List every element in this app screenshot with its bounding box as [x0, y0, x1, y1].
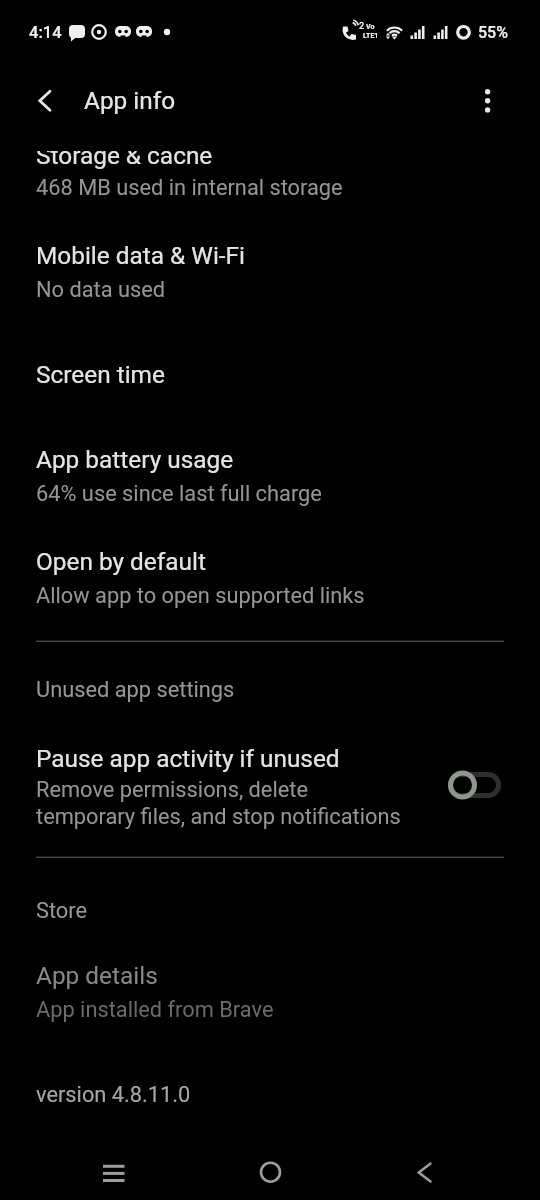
button[interactable]: [24, 78, 68, 122]
button[interactable]: [443, 765, 507, 805]
button[interactable]: [466, 78, 510, 122]
button[interactable]: [0, 942, 540, 1040]
staticText: 64% use since last full charge: [36, 481, 322, 507]
staticText: App info: [84, 86, 176, 115]
button[interactable]: [215, 1145, 325, 1200]
staticText: Unused app settings: [36, 677, 235, 703]
staticText: Remove permissions, delete: [36, 777, 308, 803]
staticText: 4:14: [29, 23, 62, 42]
staticText: 55%: [478, 23, 508, 42]
staticText: 2: [359, 21, 365, 32]
button[interactable]: [0, 428, 540, 524]
button[interactable]: [370, 1145, 480, 1200]
staticText: version 4.8.11.0: [36, 1082, 191, 1108]
button[interactable]: [0, 226, 540, 320]
staticText: Screen time: [36, 360, 165, 389]
button[interactable]: [0, 340, 540, 408]
staticText: Store: [36, 898, 88, 924]
staticText: Allow app to open supported links: [36, 583, 365, 609]
staticText: App battery usage: [36, 445, 234, 474]
staticText: Storage & cache: [36, 151, 213, 170]
button[interactable]: [0, 530, 540, 626]
staticText: 468 MB used in internal storage: [36, 175, 343, 201]
staticText: Pause app activity if unused: [36, 744, 340, 773]
staticText: Mobile data & Wi-Fi: [36, 241, 246, 270]
button[interactable]: [0, 140, 540, 218]
button[interactable]: [60, 1145, 170, 1200]
staticText: Open by default: [36, 547, 206, 576]
staticText: LTE1: [363, 32, 379, 40]
staticText: App details: [36, 961, 158, 990]
staticText: App installed from Brave: [36, 997, 274, 1023]
staticText: temporary files, and stop notifications: [36, 804, 401, 830]
staticText: No data used: [36, 277, 166, 303]
button[interactable]: [0, 726, 540, 846]
staticText: Vo: [366, 23, 375, 31]
